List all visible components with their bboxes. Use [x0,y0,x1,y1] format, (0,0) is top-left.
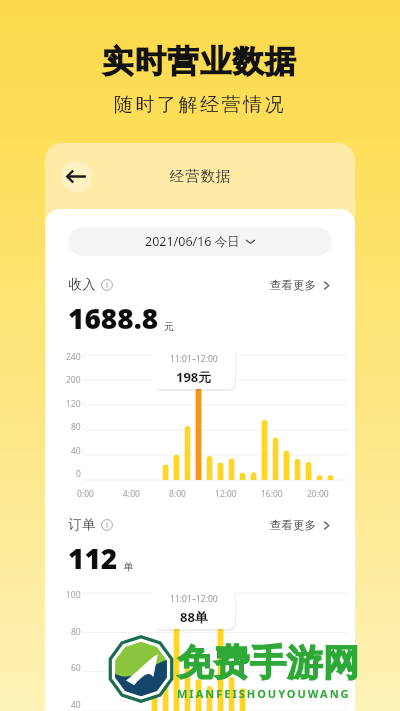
button[interactable]: 2021/06/16 今日 [68,227,332,256]
staticText: 120 [66,398,81,410]
staticText: 查看更多 [270,518,316,532]
staticText: 8:00 [169,488,186,500]
button[interactable]: 说明 [101,519,113,531]
staticText: MIANFEISHOUYOUWANG [177,686,351,701]
staticText: 免费手游网 [177,640,360,685]
staticText: 198元 [176,368,212,386]
staticText: 40 [71,699,81,711]
staticText: 40 [71,445,81,457]
staticText: 112 [68,539,118,577]
button[interactable]: 说明 [101,279,113,291]
button[interactable]: 返回 [61,161,92,192]
staticText: 0 [76,468,81,480]
staticText: 4:00 [123,488,140,500]
staticText: 1688.8 [68,299,159,337]
staticText: 16:00 [261,488,283,500]
staticText: 2021/06/16 今日 [145,233,240,250]
staticText: 查看更多 [270,278,316,292]
staticText: 20:00 [307,488,329,500]
staticText: 经营数据 [169,167,231,185]
staticText: 元 [164,320,174,333]
staticText: 100 [66,589,81,601]
staticText: 240 [66,351,81,363]
staticText: 88单 [180,608,208,626]
staticText: 60 [71,662,81,674]
staticText: 实时营业数据 [0,42,400,81]
staticText: 单 [123,560,133,573]
staticText: 0:00 [77,488,94,500]
staticText: 11:01–12:00 [170,593,218,605]
staticText: 80 [71,421,81,433]
staticText: 200 [66,374,81,386]
staticText: 12:00 [215,488,237,500]
staticText: 随时了解经营情况 [0,93,400,117]
button[interactable]: 查看更多 [270,278,332,292]
staticText: 80 [71,626,81,638]
button[interactable]: 查看更多 [270,518,332,532]
staticText: 11:01–12:00 [170,353,218,365]
staticText: 订单 [68,516,96,533]
staticText: 收入 [68,276,96,293]
